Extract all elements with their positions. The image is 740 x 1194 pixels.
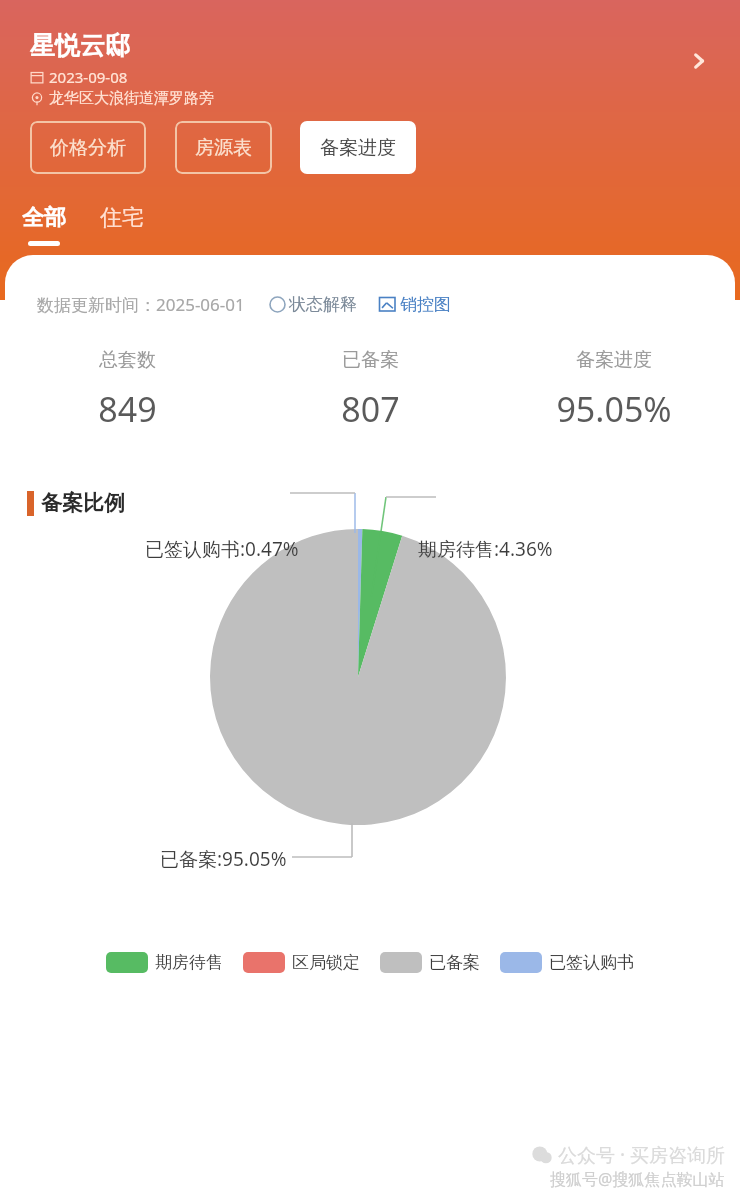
staticText: 已备案 [342, 348, 399, 372]
staticText: 备案进度 [320, 136, 396, 160]
staticText: 销控图 [400, 294, 451, 315]
staticText: 状态解释 [289, 294, 357, 315]
button[interactable]: 已备案 [249, 348, 492, 432]
staticText: 2023-09-08 [49, 67, 128, 87]
staticText: 备案比例 [41, 490, 125, 516]
button[interactable]: 已签认购书 [500, 952, 634, 973]
staticText: 95.05% [556, 386, 672, 432]
button[interactable]: 状态解释 [269, 294, 357, 315]
staticText: 公众号 · 买房咨询所 [558, 1142, 725, 1168]
staticText: 已备案:95.05% [160, 846, 287, 872]
button[interactable]: 已备案 [380, 952, 480, 973]
button[interactable]: 总套数 [5, 348, 249, 432]
staticText: 龙华区大浪街道潭罗路旁 [49, 89, 214, 108]
staticText: 已签认购书:0.47% [145, 536, 299, 562]
button[interactable]: 备案进度 [300, 121, 416, 174]
staticText: 搜狐号@搜狐焦点鞍山站 [550, 1168, 725, 1190]
staticText: 数据更新时间：2025-06-01 [37, 293, 245, 316]
staticText: 住宅 [100, 204, 144, 232]
staticText: 备案进度 [576, 348, 652, 372]
staticText: 价格分析 [50, 136, 126, 160]
staticText: 期房待售 [155, 952, 223, 973]
staticText: 期房待售:4.36% [418, 536, 553, 562]
button[interactable]: 详情 [682, 44, 716, 78]
button[interactable]: 区局锁定 [243, 952, 360, 973]
staticText: 星悦云邸 [30, 30, 130, 61]
button[interactable]: 备案进度 [492, 348, 735, 432]
staticText: 849 [98, 386, 157, 432]
button[interactable]: 住宅 [94, 204, 150, 232]
button[interactable]: 房源表 [175, 121, 272, 174]
staticText: 区局锁定 [292, 952, 360, 973]
staticText: 807 [341, 386, 400, 432]
staticText: 已签认购书 [549, 952, 634, 973]
staticText: 房源表 [195, 136, 252, 160]
staticText: 已备案 [429, 952, 480, 973]
button[interactable]: 价格分析 [30, 121, 146, 174]
button[interactable]: 销控图 [379, 294, 451, 315]
button[interactable]: 全部 [16, 204, 72, 232]
staticText: 总套数 [99, 348, 156, 372]
button[interactable]: 期房待售 [106, 952, 223, 973]
staticText: 全部 [22, 204, 66, 232]
